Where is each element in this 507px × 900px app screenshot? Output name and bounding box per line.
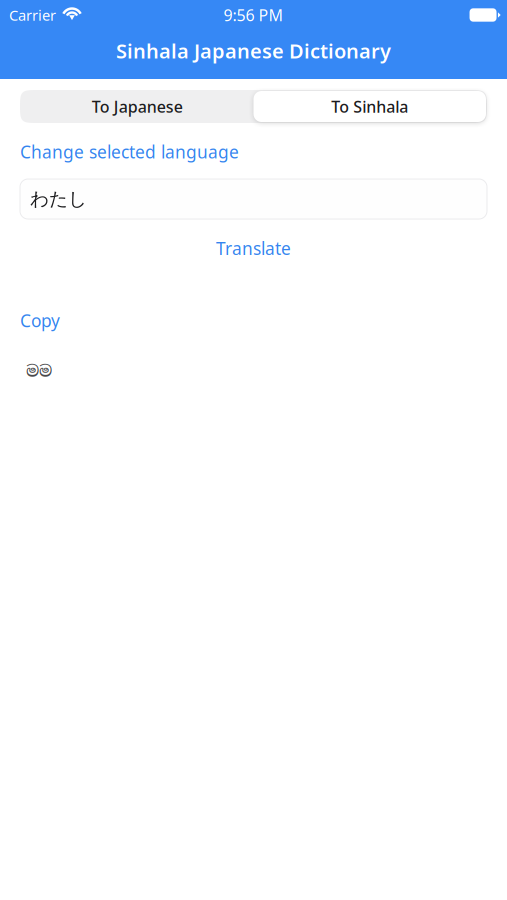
staticText: To Japanese [92,96,183,117]
staticText: මම [26,361,52,381]
button[interactable]: To Japanese [21,91,253,122]
button[interactable]: Change selected language [20,140,239,163]
staticText: Carrier [9,5,56,25]
staticText: 9:56 PM [223,4,283,26]
staticText: To Sinhala [331,96,408,117]
staticText: Change selected language [20,140,239,163]
staticText: Translate [216,237,291,260]
staticText: Sinhala Japanese Dictionary [116,37,391,64]
button[interactable]: Translate [20,237,487,260]
button[interactable]: Word to translate [20,179,487,219]
button[interactable]: Copy [20,309,60,332]
staticText: わたし [30,188,87,210]
button[interactable]: To Sinhala [253,91,486,122]
staticText: Copy [20,309,60,332]
